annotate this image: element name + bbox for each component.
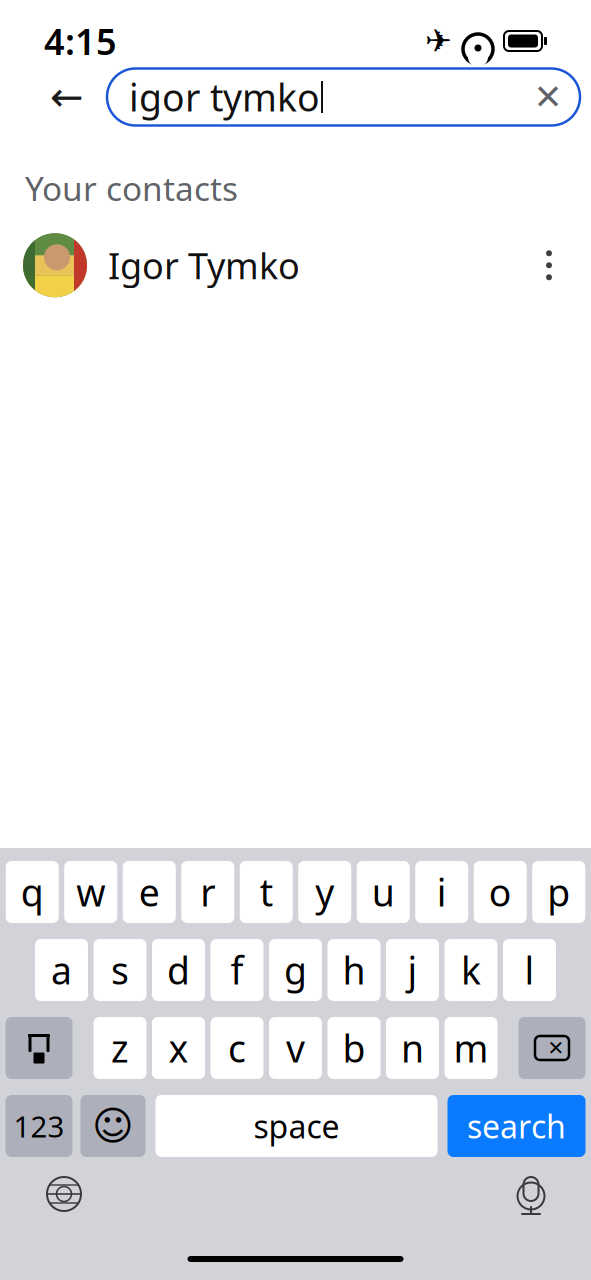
staticText: g <box>284 945 307 995</box>
button[interactable]: Shift <box>5 1017 72 1079</box>
button[interactable]: l <box>503 939 556 1001</box>
staticText: ✈ <box>425 23 452 59</box>
button[interactable]: Next keyboard <box>46 1176 82 1212</box>
button[interactable]: m <box>444 1017 497 1079</box>
button[interactable]: i <box>415 861 468 923</box>
staticText: 123 <box>13 1106 64 1145</box>
button[interactable]: t <box>240 861 293 923</box>
button[interactable]: search <box>447 1095 585 1157</box>
staticText: v <box>286 1023 305 1073</box>
staticText: ✕ <box>547 1037 564 1059</box>
staticText: ✕ <box>533 77 562 117</box>
staticText: b <box>342 1023 365 1073</box>
staticText: w <box>76 867 105 917</box>
button[interactable]: b <box>327 1017 380 1079</box>
button[interactable]: n <box>386 1017 439 1079</box>
button[interactable]: v <box>269 1017 322 1079</box>
staticText: search <box>467 1105 566 1147</box>
staticText: t <box>260 867 273 917</box>
staticText: l <box>524 945 534 995</box>
button[interactable]: s <box>93 939 146 1001</box>
staticText: j <box>407 945 417 995</box>
staticText: r <box>200 867 215 917</box>
staticText: q <box>21 867 44 917</box>
staticText: e <box>139 867 160 917</box>
button[interactable]: space <box>155 1095 437 1157</box>
button[interactable]: Clear <box>526 75 570 119</box>
staticText: f <box>230 945 243 995</box>
button[interactable]: q <box>6 861 59 923</box>
button[interactable]: f <box>210 939 263 1001</box>
button[interactable]: 123 <box>5 1095 72 1157</box>
staticText: ☺ <box>92 1103 134 1149</box>
staticText: c <box>228 1023 246 1073</box>
staticText: o <box>489 867 512 917</box>
button[interactable]: y <box>298 861 351 923</box>
button[interactable]: a <box>35 939 88 1001</box>
staticText: ← <box>50 74 84 120</box>
staticText: h <box>342 945 365 995</box>
staticText: s <box>111 945 129 995</box>
button[interactable]: g <box>269 939 322 1001</box>
button[interactable]: c <box>210 1017 263 1079</box>
staticText: m <box>453 1023 488 1073</box>
button[interactable]: r <box>181 861 234 923</box>
staticText: igor tymko <box>129 72 320 122</box>
button[interactable]: u <box>357 861 410 923</box>
staticText: z <box>111 1023 129 1073</box>
button[interactable]: j <box>386 939 439 1001</box>
button[interactable]: Dictate <box>515 1173 547 1215</box>
staticText: u <box>372 867 395 917</box>
staticText: space <box>253 1105 339 1147</box>
staticText: p <box>547 867 570 917</box>
button[interactable]: k <box>444 939 497 1001</box>
staticText: d <box>167 945 190 995</box>
staticText: 4:15 <box>44 17 117 65</box>
button[interactable]: z <box>93 1017 146 1079</box>
staticText: k <box>461 945 481 995</box>
button[interactable]: w <box>64 861 117 923</box>
staticText: a <box>51 945 72 995</box>
button[interactable]: Back <box>41 71 93 123</box>
staticText: n <box>401 1023 424 1073</box>
button[interactable]: h <box>327 939 380 1001</box>
staticText: y <box>315 867 334 917</box>
button[interactable]: d <box>152 939 205 1001</box>
staticText: Your contacts <box>25 166 238 210</box>
staticText: x <box>168 1023 188 1073</box>
button[interactable]: Emoji <box>80 1095 145 1157</box>
staticText: i <box>437 867 447 917</box>
button[interactable]: Igor Tymko <box>0 224 591 306</box>
button[interactable]: p <box>532 861 585 923</box>
button[interactable]: e <box>123 861 176 923</box>
button[interactable]: o <box>474 861 527 923</box>
button[interactable]: Delete <box>518 1017 585 1079</box>
staticText: Igor Tymko <box>108 241 300 289</box>
button[interactable]: x <box>152 1017 205 1079</box>
